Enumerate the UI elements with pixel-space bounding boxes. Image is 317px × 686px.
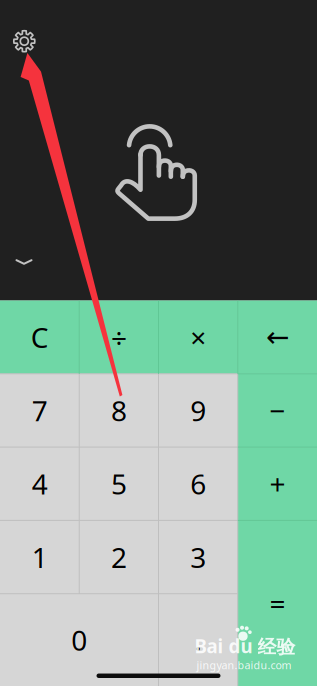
button[interactable]: 5: [79, 447, 158, 520]
button[interactable]: 4: [0, 447, 79, 520]
button[interactable]: 3: [158, 520, 238, 594]
button[interactable]: 9: [158, 374, 238, 447]
staticText: 8: [111, 392, 127, 429]
button[interactable]: ×: [158, 300, 238, 374]
button[interactable]: Settings: [7, 24, 41, 58]
button[interactable]: 6: [158, 447, 238, 520]
staticText: jingyan.baidu.com: [196, 658, 291, 672]
staticText: +: [269, 465, 285, 502]
staticText: 3: [190, 538, 206, 576]
button[interactable]: C: [0, 300, 79, 374]
staticText: ←: [266, 321, 289, 353]
staticText: 2: [111, 538, 127, 576]
staticText: 5: [111, 465, 127, 502]
staticText: 7: [32, 392, 48, 429]
button[interactable]: −: [238, 374, 317, 447]
button[interactable]: .: [158, 594, 238, 686]
button[interactable]: ÷: [79, 300, 158, 374]
staticText: 6: [190, 465, 206, 502]
staticText: ×: [190, 319, 206, 356]
button[interactable]: +: [238, 447, 317, 520]
button[interactable]: 1: [0, 520, 79, 594]
button[interactable]: =: [238, 520, 317, 686]
staticText: =: [269, 585, 285, 622]
staticText: −: [269, 392, 285, 429]
button[interactable]: 7: [0, 374, 79, 447]
staticText: .: [194, 621, 202, 658]
staticText: 4: [32, 465, 48, 502]
staticText: 0: [71, 621, 87, 658]
button[interactable]: 0: [0, 594, 158, 686]
staticText: 1: [32, 538, 48, 576]
button[interactable]: 8: [79, 374, 158, 447]
button[interactable]: 2: [79, 520, 158, 594]
staticText: C: [31, 319, 49, 356]
staticText: 9: [190, 392, 206, 429]
button[interactable]: Expand history: [8, 250, 40, 274]
staticText: Bai du 经验: [194, 634, 295, 658]
button[interactable]: ←: [238, 300, 317, 374]
staticText: ÷: [111, 319, 127, 356]
